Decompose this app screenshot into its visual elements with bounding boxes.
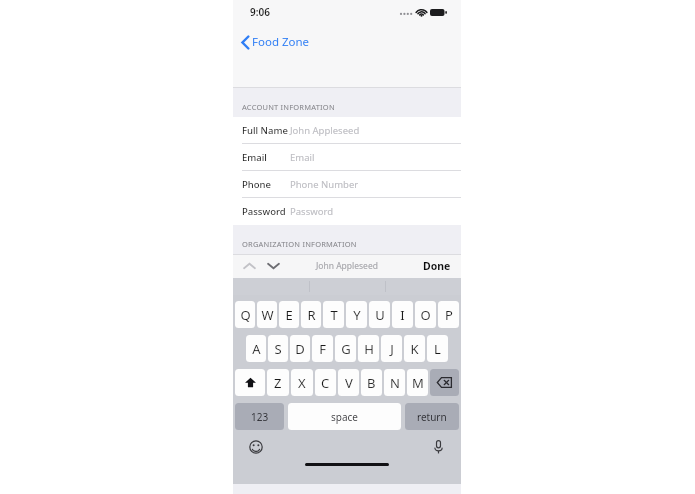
button[interactable]: V: [338, 369, 359, 396]
staticText: Q: [240, 306, 251, 324]
button[interactable]: B: [361, 369, 382, 396]
button[interactable]: Password: [233, 198, 461, 225]
staticText: I: [400, 306, 405, 324]
button[interactable]: Next field: [263, 256, 283, 276]
button[interactable]: M: [407, 369, 428, 396]
staticText: V: [345, 374, 353, 392]
button[interactable]: Email: [233, 144, 461, 171]
button[interactable]: L: [427, 335, 448, 362]
button[interactable]: Z: [267, 369, 289, 396]
staticText: A: [252, 340, 261, 358]
staticText: Food Zone: [252, 34, 310, 50]
button[interactable]: J: [381, 335, 402, 362]
staticText: 9:06: [250, 5, 270, 19]
staticText: F: [319, 340, 326, 358]
staticText: O: [420, 306, 431, 324]
button[interactable]: S: [268, 335, 288, 362]
button[interactable]: 123: [235, 403, 284, 430]
button[interactable]: W: [257, 301, 277, 328]
staticText: 123: [251, 410, 269, 424]
staticText: W: [261, 306, 274, 324]
button[interactable]: C: [315, 369, 336, 396]
button[interactable]: N: [384, 369, 405, 396]
button[interactable]: O: [415, 301, 436, 328]
button[interactable]: Done: [413, 256, 461, 276]
staticText: ACCOUNT INFORMATION: [242, 102, 335, 112]
button[interactable]: space: [288, 403, 401, 430]
staticText: Password: [290, 205, 333, 218]
button[interactable]: Backspace: [430, 369, 459, 396]
button[interactable]: Emoji: [247, 438, 265, 456]
button[interactable]: P: [438, 301, 459, 328]
button[interactable]: G: [335, 335, 356, 362]
button[interactable]: T: [323, 301, 344, 328]
button[interactable]: Previous field: [239, 256, 259, 276]
staticText: L: [434, 340, 441, 358]
button[interactable]: K: [404, 335, 425, 362]
staticText: S: [274, 340, 282, 358]
staticText: Z: [274, 374, 282, 392]
button[interactable]: Phone: [233, 171, 461, 198]
button[interactable]: E: [279, 301, 299, 328]
button[interactable]: D: [290, 335, 310, 362]
staticText: Password: [242, 205, 286, 218]
staticText: G: [341, 340, 351, 358]
button[interactable]: Y: [346, 301, 367, 328]
staticText: R: [307, 306, 316, 324]
staticText: John Appleseed: [316, 260, 378, 272]
button[interactable]: R: [301, 301, 321, 328]
button[interactable]: Shift: [235, 369, 265, 396]
staticText: J: [390, 340, 394, 358]
button[interactable]: X: [291, 369, 313, 396]
staticText: E: [285, 306, 293, 324]
staticText: return: [417, 410, 447, 424]
staticText: Phone Number: [290, 178, 359, 191]
staticText: Email: [242, 151, 267, 164]
button[interactable]: Dictation: [429, 438, 447, 456]
staticText: John Appleseed: [290, 124, 360, 137]
staticText: T: [330, 306, 338, 324]
staticText: Y: [353, 306, 361, 324]
staticText: Full Name: [242, 124, 288, 137]
staticText: C: [321, 374, 330, 392]
button[interactable]: return: [405, 403, 459, 430]
staticText: ORGANIZATION INFORMATION: [242, 239, 357, 249]
button[interactable]: Full Name: [233, 117, 461, 144]
button[interactable]: A: [246, 335, 266, 362]
staticText: Phone: [242, 178, 271, 191]
button[interactable]: F: [312, 335, 333, 362]
button[interactable]: H: [358, 335, 379, 362]
staticText: U: [375, 306, 385, 324]
staticText: K: [410, 340, 419, 358]
staticText: H: [364, 340, 374, 358]
staticText: D: [295, 340, 305, 358]
staticText: Done: [423, 259, 451, 273]
staticText: X: [298, 374, 306, 392]
staticText: space: [331, 410, 358, 424]
staticText: N: [390, 374, 400, 392]
staticText: Email: [290, 151, 315, 164]
button[interactable]: I: [392, 301, 413, 328]
staticText: B: [367, 374, 376, 392]
button[interactable]: Q: [235, 301, 255, 328]
staticText: P: [445, 306, 453, 324]
staticText: M: [412, 374, 424, 392]
button[interactable]: U: [369, 301, 390, 328]
button[interactable]: Food Zone: [237, 31, 314, 53]
